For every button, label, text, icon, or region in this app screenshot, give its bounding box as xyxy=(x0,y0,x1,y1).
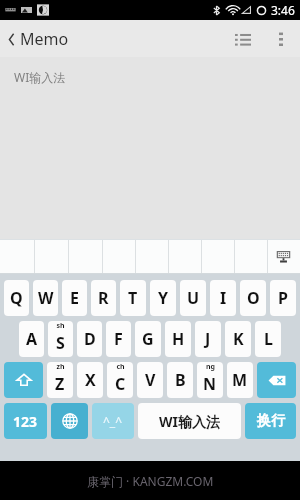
button[interactable] xyxy=(34,239,68,274)
button[interactable] xyxy=(234,239,267,274)
staticText: O xyxy=(247,287,260,309)
staticText: 换行 xyxy=(257,412,285,430)
staticText: S xyxy=(56,332,65,354)
staticText: Y xyxy=(158,287,169,309)
button[interactable]: E xyxy=(62,280,87,316)
staticText: R xyxy=(98,287,109,309)
button[interactable]: Switch input language xyxy=(51,403,88,439)
staticText: sh xyxy=(56,321,65,331)
staticText: U xyxy=(187,287,200,309)
staticText: W xyxy=(38,287,54,309)
button[interactable]: More options xyxy=(262,20,300,57)
button[interactable]: Memo xyxy=(4,23,73,55)
button[interactable]: Q xyxy=(4,280,29,316)
staticText: WI输入法 xyxy=(14,69,66,85)
button[interactable]: O xyxy=(240,280,266,316)
button[interactable]: 123 xyxy=(4,403,47,439)
staticText: WI输入法 xyxy=(159,412,220,431)
button[interactable]: L xyxy=(255,321,281,357)
staticText: T xyxy=(128,287,138,309)
staticText: ^_^ xyxy=(103,413,123,429)
staticText: H xyxy=(172,328,185,350)
button[interactable]: T xyxy=(120,280,146,316)
button[interactable]: 换行 xyxy=(245,403,296,439)
button[interactable]: M xyxy=(227,362,253,398)
staticText: D xyxy=(84,328,96,350)
staticText: I xyxy=(220,287,227,309)
button[interactable]: J xyxy=(195,321,221,357)
button[interactable]: V xyxy=(137,362,163,398)
button[interactable]: B xyxy=(167,362,193,398)
button[interactable]: F xyxy=(106,321,131,357)
staticText: E xyxy=(70,287,79,309)
button[interactable]: P xyxy=(270,280,296,316)
button[interactable]: D xyxy=(77,321,102,357)
staticText: Memo xyxy=(20,28,69,50)
button[interactable]: U xyxy=(180,280,206,316)
button[interactable] xyxy=(201,239,234,274)
staticText: N xyxy=(203,373,217,395)
button[interactable]: K xyxy=(225,321,251,357)
button[interactable]: W xyxy=(33,280,58,316)
staticText: 康掌门 · KANGZM.COM xyxy=(87,473,214,489)
button[interactable] xyxy=(267,239,300,274)
staticText: zh xyxy=(56,362,65,372)
staticText: B xyxy=(175,369,186,391)
button[interactable]: Y xyxy=(150,280,176,316)
staticText: L xyxy=(264,328,273,350)
button[interactable] xyxy=(135,239,168,274)
staticText: P xyxy=(278,287,288,309)
staticText: ng xyxy=(206,362,215,372)
button[interactable]: sh xyxy=(48,321,73,357)
button[interactable]: H xyxy=(165,321,191,357)
button[interactable] xyxy=(0,239,34,274)
staticText: A xyxy=(26,328,38,350)
staticText: Z xyxy=(55,373,65,395)
staticText: C xyxy=(115,373,126,395)
staticText: G xyxy=(142,328,154,350)
staticText: K xyxy=(233,328,244,350)
staticText: V xyxy=(145,369,156,391)
button[interactable]: X xyxy=(77,362,103,398)
button[interactable]: ch xyxy=(107,362,133,398)
button[interactable] xyxy=(168,239,201,274)
button[interactable]: ng xyxy=(197,362,223,398)
button[interactable]: I xyxy=(210,280,236,316)
button[interactable]: Backspace xyxy=(257,362,296,398)
button[interactable]: List view xyxy=(224,20,262,57)
staticText: F xyxy=(114,328,123,350)
button[interactable]: G xyxy=(135,321,161,357)
staticText: ch xyxy=(116,362,125,372)
staticText: J xyxy=(205,328,211,350)
button[interactable]: WI输入法 xyxy=(138,403,241,439)
staticText: 123 xyxy=(13,412,38,431)
staticText: Q xyxy=(10,287,23,309)
button[interactable]: R xyxy=(91,280,116,316)
button[interactable]: Shift xyxy=(4,362,43,398)
staticText: 3:46 xyxy=(271,2,295,18)
button[interactable] xyxy=(68,239,102,274)
button[interactable]: zh xyxy=(47,362,73,398)
staticText: X xyxy=(85,369,96,391)
staticText: M xyxy=(232,369,248,391)
button[interactable]: WI输入法 xyxy=(0,57,300,239)
button[interactable]: A xyxy=(19,321,44,357)
button[interactable] xyxy=(102,239,135,274)
button[interactable]: Emoticons xyxy=(92,403,134,439)
